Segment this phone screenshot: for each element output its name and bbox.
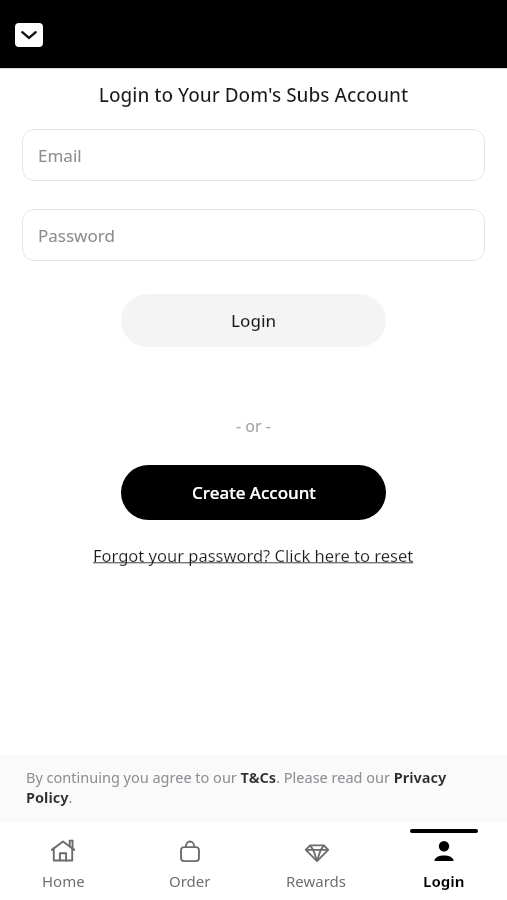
staticText: Login	[423, 871, 465, 891]
staticText: Forgot your password? Click here to rese…	[93, 544, 414, 566]
staticText: Password	[38, 224, 115, 247]
button[interactable]: Order	[126, 823, 253, 900]
staticText: - or -	[0, 415, 507, 437]
button[interactable]: Home	[0, 823, 126, 900]
staticText: Email	[38, 144, 82, 167]
button[interactable]: Password	[22, 209, 485, 261]
button[interactable]: Forgot your password? Click here to rese…	[89, 542, 418, 568]
button[interactable]: Collapse	[15, 23, 43, 47]
staticText: Create Account	[192, 481, 316, 504]
staticText: Login	[231, 309, 277, 332]
staticText: Rewards	[286, 871, 347, 891]
button[interactable]: Login	[380, 823, 507, 900]
button[interactable]: Login	[121, 294, 386, 347]
button[interactable]: Create Account	[121, 465, 386, 520]
staticText: Login to Your Dom's Subs Account	[0, 82, 507, 108]
staticText: Order	[169, 871, 211, 891]
staticText: Home	[42, 871, 85, 891]
button[interactable]: Email	[22, 129, 485, 181]
staticText: By continuing you agree to our T&Cs. Ple…	[26, 767, 481, 807]
button[interactable]: Rewards	[253, 823, 380, 900]
